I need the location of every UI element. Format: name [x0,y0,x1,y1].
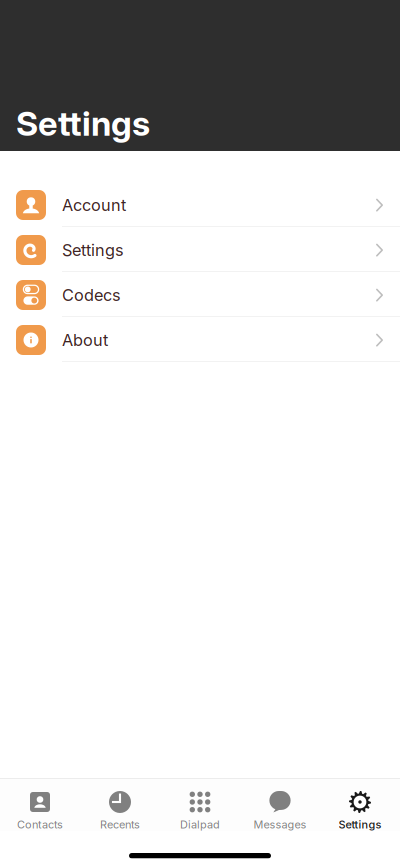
staticText: Dialpad [180,818,220,831]
staticText: Contacts [17,818,63,831]
staticText: About [62,330,108,350]
staticText: Recents [100,818,140,831]
staticText: Account [62,195,126,215]
button[interactable]: Settings [0,227,400,272]
button[interactable]: Dialpad [160,779,240,831]
button[interactable]: Codecs [0,272,400,317]
staticText: Settings [338,818,381,831]
button[interactable]: Contacts [0,779,80,831]
button[interactable]: Settings [320,779,400,831]
button[interactable]: Messages [240,779,320,831]
button[interactable]: Recents [80,779,160,831]
staticText: Messages [253,818,306,831]
button[interactable]: About [0,317,400,362]
staticText: Codecs [62,285,121,305]
staticText: Settings [16,103,150,144]
button[interactable]: Account [0,182,400,227]
staticText: Settings [62,240,124,260]
